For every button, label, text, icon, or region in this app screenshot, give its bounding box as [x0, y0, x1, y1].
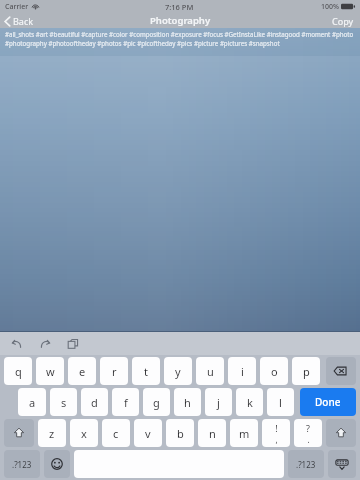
- staticText: x: [81, 426, 87, 441]
- staticText: n: [209, 426, 216, 441]
- button[interactable]: Undo: [8, 335, 26, 353]
- staticText: t: [144, 364, 148, 379]
- button[interactable]: x: [70, 419, 98, 447]
- staticText: 100%: [321, 2, 339, 12]
- staticText: a: [29, 395, 36, 410]
- staticText: h: [184, 395, 191, 410]
- button[interactable]: Shift: [326, 419, 356, 447]
- button[interactable]: o: [260, 357, 288, 385]
- button[interactable]: Copy: [64, 335, 82, 353]
- button[interactable]: Redo: [36, 335, 54, 353]
- staticText: p: [303, 364, 310, 379]
- staticText: s: [61, 395, 67, 410]
- button[interactable]: e: [68, 357, 96, 385]
- button[interactable]: n: [198, 419, 226, 447]
- button[interactable]: g: [143, 388, 170, 416]
- button[interactable]: w: [36, 357, 64, 385]
- button[interactable]: b: [166, 419, 194, 447]
- staticText: Copy: [332, 15, 354, 27]
- button[interactable]: h: [174, 388, 201, 416]
- staticText: f: [124, 395, 128, 410]
- staticText: k: [247, 395, 253, 410]
- button[interactable]: z: [38, 419, 66, 447]
- staticText: .: [307, 434, 310, 445]
- button[interactable]: Back: [0, 14, 42, 28]
- button[interactable]: ?: [294, 419, 322, 447]
- button[interactable]: v: [134, 419, 162, 447]
- staticText: w: [46, 364, 55, 379]
- staticText: !: [275, 422, 278, 434]
- staticText: r: [112, 364, 117, 379]
- button[interactable]: a: [18, 388, 46, 416]
- button[interactable]: #all_shots #art #beautiful #capture #col…: [0, 28, 360, 56]
- staticText: 7:16 PM: [165, 2, 194, 12]
- staticText: ,: [275, 434, 278, 445]
- staticText: u: [207, 364, 214, 379]
- button[interactable]: p: [292, 357, 320, 385]
- staticText: i: [241, 364, 244, 379]
- button[interactable]: r: [100, 357, 128, 385]
- button[interactable]: .?123: [4, 450, 40, 478]
- staticText: c: [113, 426, 119, 441]
- staticText: Photography: [150, 14, 211, 27]
- staticText: v: [145, 426, 151, 441]
- button[interactable]: c: [102, 419, 130, 447]
- button[interactable]: j: [205, 388, 232, 416]
- staticText: Done: [315, 395, 341, 409]
- button[interactable]: s: [50, 388, 77, 416]
- button[interactable]: i: [228, 357, 256, 385]
- staticText: m: [239, 426, 250, 441]
- button[interactable]: f: [112, 388, 139, 416]
- button[interactable]: t: [132, 357, 160, 385]
- button[interactable]: Shift: [4, 419, 34, 447]
- staticText: z: [49, 426, 55, 441]
- staticText: Carrier: [5, 2, 29, 12]
- button[interactable]: !: [262, 419, 290, 447]
- button[interactable]: Copy: [326, 14, 360, 28]
- staticText: e: [79, 364, 86, 379]
- button[interactable]: Backspace: [326, 357, 356, 385]
- staticText: j: [217, 395, 220, 410]
- staticText: l: [279, 395, 282, 410]
- staticText: b: [177, 426, 184, 441]
- button[interactable]: Done: [300, 388, 356, 416]
- staticText: o: [271, 364, 278, 379]
- staticText: .?123: [296, 459, 316, 470]
- button[interactable]: m: [230, 419, 258, 447]
- button[interactable]: Hide keyboard: [328, 450, 356, 478]
- button[interactable]: Emoji: [44, 450, 70, 478]
- staticText: .?123: [12, 459, 32, 470]
- staticText: g: [153, 395, 160, 410]
- staticText: Back: [13, 15, 34, 27]
- button[interactable]: k: [236, 388, 263, 416]
- staticText: q: [15, 364, 22, 379]
- staticText: d: [91, 395, 98, 410]
- button[interactable]: y: [164, 357, 192, 385]
- staticText: ?: [306, 422, 310, 434]
- button[interactable]: .?123: [288, 450, 324, 478]
- staticText: #all_shots #art #beautiful #capture #col…: [5, 30, 355, 48]
- button[interactable]: d: [81, 388, 108, 416]
- button[interactable]: l: [267, 388, 294, 416]
- staticText: y: [175, 364, 181, 379]
- button[interactable]: u: [196, 357, 224, 385]
- button[interactable]: q: [4, 357, 32, 385]
